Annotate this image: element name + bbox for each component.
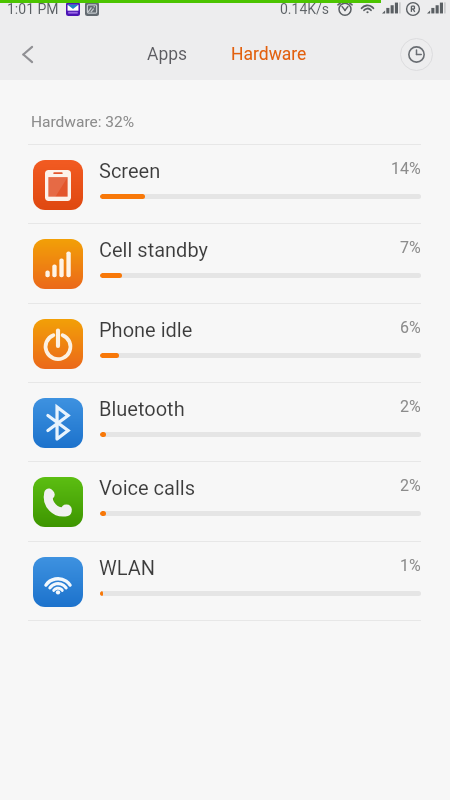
button[interactable]: Hardware <box>221 35 317 74</box>
staticText: Voice calls <box>99 476 195 499</box>
button[interactable]: Cell standby <box>0 224 450 303</box>
staticText: WLAN <box>99 556 156 579</box>
staticText: 2% <box>400 476 421 495</box>
staticText: 1% <box>400 556 421 575</box>
button[interactable]: WLAN <box>0 542 450 620</box>
staticText: 6% <box>400 318 421 337</box>
button[interactable]: History <box>399 37 433 71</box>
staticText: Hardware: 32% <box>31 113 135 131</box>
staticText: 1:01 PM <box>7 1 59 17</box>
button[interactable]: Screen <box>0 145 450 223</box>
staticText: Bluetooth <box>99 397 185 420</box>
staticText: Hardware <box>231 44 307 65</box>
staticText: 2% <box>400 397 421 416</box>
button[interactable]: Phone idle <box>0 304 450 382</box>
staticText: Screen <box>99 159 161 182</box>
button[interactable]: Back <box>10 37 44 71</box>
button[interactable]: Voice calls <box>0 462 450 541</box>
staticText: Phone idle <box>99 318 193 341</box>
button[interactable]: Apps <box>137 35 198 74</box>
staticText: Cell standby <box>99 238 208 261</box>
staticText: 14% <box>391 159 421 178</box>
staticText: Apps <box>147 44 188 65</box>
staticText: 0.14K/s <box>280 1 330 17</box>
button[interactable]: Bluetooth <box>0 383 450 461</box>
staticText: 7% <box>400 238 421 257</box>
